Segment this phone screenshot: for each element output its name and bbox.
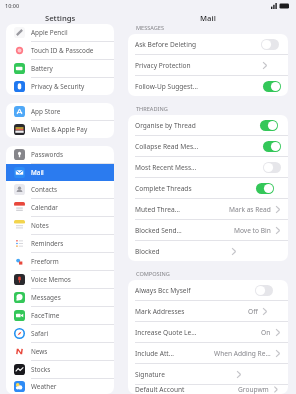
button[interactable]: Freeform bbox=[6, 253, 114, 270]
button[interactable]: Signature bbox=[128, 364, 288, 384]
staticText: Touch ID & Passcode bbox=[31, 46, 94, 55]
staticText: News bbox=[31, 347, 48, 356]
button[interactable]: Privacy & Security bbox=[6, 78, 114, 95]
staticText: Battery bbox=[31, 64, 53, 73]
staticText: Reminders bbox=[31, 239, 64, 248]
button[interactable]: Mark Addresses bbox=[128, 301, 288, 321]
button[interactable]: Blocked Sender Options bbox=[128, 220, 288, 240]
button[interactable]: FaceTime bbox=[6, 307, 114, 324]
button[interactable]: Notes bbox=[6, 217, 114, 234]
staticText: 10:00 bbox=[5, 2, 20, 9]
button[interactable]: News bbox=[6, 343, 114, 360]
staticText: Complete Threads bbox=[135, 184, 192, 193]
staticText: Freeform bbox=[31, 257, 59, 266]
staticText: Settings bbox=[45, 13, 76, 23]
button[interactable]: Weather bbox=[6, 379, 114, 394]
staticText: Weather bbox=[31, 382, 57, 391]
button[interactable]: Touch ID & Passcode bbox=[6, 42, 114, 59]
staticText: Passwords bbox=[31, 150, 63, 159]
button[interactable]: Privacy Protection bbox=[128, 55, 288, 75]
staticText: Privacy & Security bbox=[31, 82, 85, 91]
staticText: Most Recent Message on Top bbox=[135, 163, 199, 172]
button[interactable]: Default Account bbox=[128, 385, 288, 394]
staticText: Groupwm bbox=[238, 385, 269, 394]
staticText: Increase Quote Level bbox=[135, 328, 198, 337]
button[interactable]: Include Attachments with Replies bbox=[128, 343, 288, 363]
button[interactable]: Passwords bbox=[6, 146, 114, 163]
button[interactable]: Reminders bbox=[6, 235, 114, 252]
button[interactable]: Apple Pencil bbox=[6, 24, 114, 41]
button[interactable]: Muted Thread Action bbox=[128, 199, 288, 219]
button[interactable]: Ask Before Deleting bbox=[128, 34, 288, 54]
staticText: Mark Addresses bbox=[135, 307, 185, 316]
staticText: Signature bbox=[135, 370, 165, 379]
button[interactable]: Organise by Thread bbox=[128, 115, 288, 135]
button[interactable]: App Store bbox=[6, 103, 114, 120]
staticText: Organise by Thread bbox=[135, 121, 196, 130]
staticText: When Adding Re… bbox=[214, 349, 271, 358]
staticText: Mark as Read bbox=[229, 205, 271, 214]
button[interactable]: Calendar bbox=[6, 199, 114, 216]
staticText: Default Account bbox=[135, 385, 185, 394]
staticText: Messages bbox=[31, 293, 61, 302]
staticText: Notes bbox=[31, 221, 49, 230]
staticText: Always Bcc Myself bbox=[135, 286, 191, 295]
button[interactable]: Complete Threads bbox=[128, 178, 288, 198]
staticText: Safari bbox=[31, 329, 49, 338]
staticText: Include Attachments with Replies bbox=[135, 349, 174, 358]
staticText: Collapse Read Messages bbox=[135, 142, 199, 151]
staticText: Blocked bbox=[135, 247, 160, 256]
staticText: Ask Before Deleting bbox=[135, 40, 197, 49]
staticText: On bbox=[261, 328, 271, 337]
button[interactable]: Blocked bbox=[128, 241, 288, 261]
button[interactable]: Most Recent Message on Top bbox=[128, 157, 288, 177]
staticText: Stocks bbox=[31, 365, 51, 374]
button[interactable]: Safari bbox=[6, 325, 114, 342]
staticText: Calendar bbox=[31, 203, 58, 212]
button[interactable]: Follow-Up Suggestions bbox=[128, 76, 288, 96]
button[interactable]: Collapse Read Messages bbox=[128, 136, 288, 156]
staticText: MESSAGES bbox=[136, 24, 165, 32]
staticText: Follow-Up Suggestions bbox=[135, 82, 199, 91]
button[interactable]: Increase Quote Level bbox=[128, 322, 288, 342]
staticText: Muted Thread Action bbox=[135, 205, 182, 214]
staticText: App Store bbox=[31, 107, 61, 116]
staticText: Contacts bbox=[31, 185, 58, 194]
staticText: THREADING bbox=[136, 105, 168, 113]
button[interactable]: Stocks bbox=[6, 361, 114, 378]
staticText: Mail bbox=[31, 168, 44, 177]
button[interactable]: Voice Memos bbox=[6, 271, 114, 288]
staticText: Move to Bin bbox=[234, 226, 271, 235]
staticText: COMPOSING bbox=[136, 270, 170, 278]
staticText: Blocked Sender Options bbox=[135, 226, 184, 235]
button[interactable]: Mail bbox=[6, 164, 114, 181]
staticText: FaceTime bbox=[31, 311, 60, 320]
button[interactable]: Always Bcc Myself bbox=[128, 280, 288, 300]
button[interactable]: Contacts bbox=[6, 181, 114, 198]
button[interactable]: Battery bbox=[6, 60, 114, 77]
staticText: Off bbox=[248, 307, 258, 316]
button[interactable]: Messages bbox=[6, 289, 114, 306]
button[interactable]: Wallet & Apple Pay bbox=[6, 121, 114, 138]
staticText: Apple Pencil bbox=[31, 28, 68, 37]
staticText: Voice Memos bbox=[31, 275, 71, 284]
staticText: Mail bbox=[200, 13, 216, 23]
staticText: Wallet & Apple Pay bbox=[31, 125, 88, 134]
staticText: Privacy Protection bbox=[135, 61, 191, 70]
